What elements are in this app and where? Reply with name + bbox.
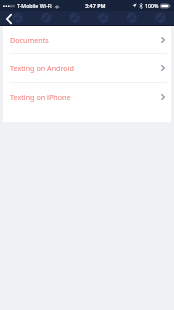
button[interactable]: Back (0, 11, 18, 26)
staticText: T-Mobile Wi-Fi (17, 2, 52, 9)
button[interactable]: Documents (3, 26, 171, 53)
staticText: Texting on iPhone (10, 92, 71, 102)
staticText: 100% (145, 2, 159, 9)
staticText: 3:47 PM (85, 2, 106, 9)
staticText: Texting on Android (10, 63, 74, 73)
button[interactable]: Texting on iPhone (3, 83, 171, 111)
staticText: Documents (10, 35, 49, 45)
button[interactable]: Texting on Android (3, 54, 171, 82)
